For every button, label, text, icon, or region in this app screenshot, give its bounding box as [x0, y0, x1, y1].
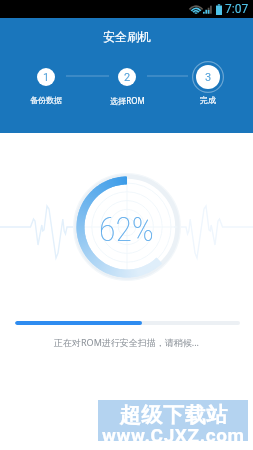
staticText: 2 — [124, 71, 131, 84]
staticText: 正在对ROM进行安全扫描，请稍候... — [54, 336, 200, 348]
staticText: 选择ROM — [110, 95, 145, 106]
button[interactable]: 3 — [184, 57, 232, 107]
staticText: 3 — [205, 71, 212, 84]
staticText: 7:07 — [225, 2, 249, 16]
button[interactable]: 1 — [22, 57, 70, 107]
staticText: 完成 — [200, 95, 216, 105]
staticText: 备份数据 — [30, 95, 62, 105]
staticText: 62% — [99, 209, 154, 249]
button[interactable]: 2 — [103, 57, 151, 107]
staticText: 超级下载站 — [119, 402, 228, 428]
staticText: www.CJXZ.com — [102, 424, 245, 446]
staticText: 安全刷机 — [103, 29, 151, 44]
staticText: 1 — [43, 71, 50, 84]
